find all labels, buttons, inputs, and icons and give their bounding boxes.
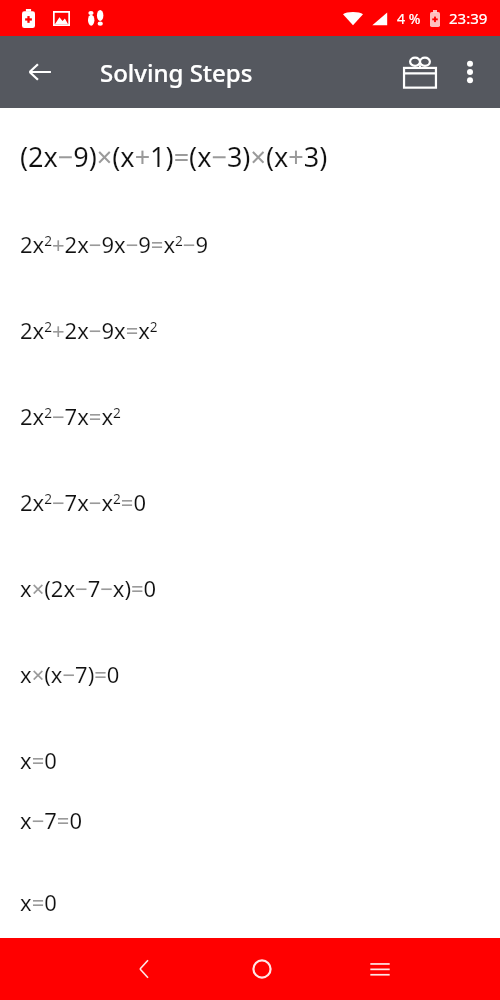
staticText: 2x2−7x−x2=0 bbox=[20, 487, 147, 517]
staticText: x×(x−7)=0 bbox=[20, 659, 120, 689]
staticText: 2x2+2x−9x=x2 bbox=[20, 315, 158, 345]
staticText: 2x2+2x−9x−9=x2−9 bbox=[20, 229, 208, 259]
staticText: 23:39 bbox=[449, 8, 488, 28]
staticText: x=0 bbox=[20, 887, 57, 917]
staticText: 4 % bbox=[397, 9, 421, 28]
button[interactable]: More options bbox=[446, 48, 494, 96]
staticText: 2x2−7x=x2 bbox=[20, 401, 121, 431]
button[interactable]: Recent apps bbox=[344, 938, 416, 1000]
staticText: x×(2x−7−x)=0 bbox=[20, 573, 157, 603]
staticText: (2x−9)×(x+1)=(x−3)×(x+3) bbox=[20, 138, 328, 175]
staticText: Solving Steps bbox=[100, 56, 253, 89]
staticText: x=0 bbox=[20, 745, 57, 775]
button[interactable]: Watch ad for reward bbox=[394, 46, 446, 98]
button[interactable]: Back bbox=[108, 938, 180, 1000]
staticText: x−7=0 bbox=[20, 805, 82, 835]
button[interactable]: Back bbox=[14, 46, 66, 98]
button[interactable]: Home bbox=[226, 938, 298, 1000]
